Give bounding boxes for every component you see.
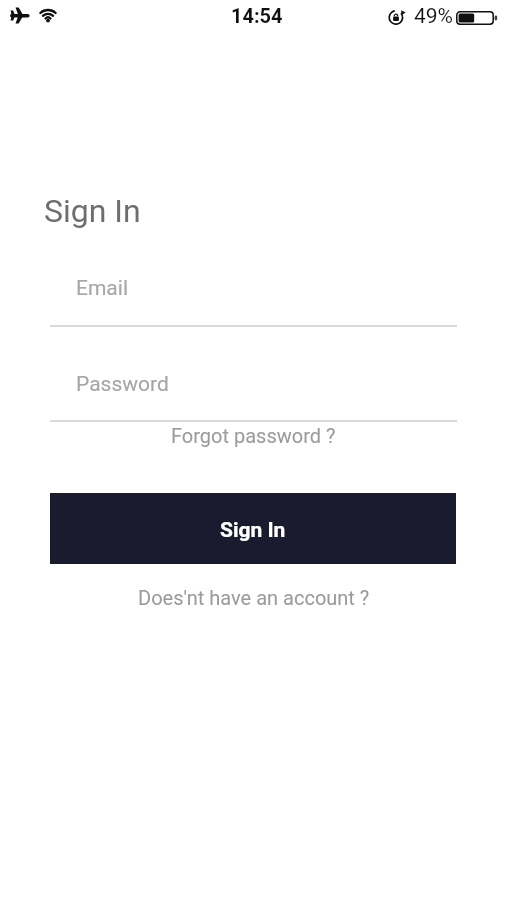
staticText: Sign In [44,192,141,230]
staticText: Email [76,276,128,301]
staticText: Password [76,372,169,397]
staticText: Does'nt have an account ? [138,586,370,609]
button[interactable]: Forgot password ? [171,424,336,447]
button[interactable]: Does'nt have an account ? [138,586,370,609]
button[interactable]: Sign In [50,493,456,564]
button[interactable]: Password [50,357,457,422]
button[interactable]: Email [50,262,457,327]
staticText: 49% [414,4,453,29]
staticText: Forgot password ? [171,424,336,447]
staticText: Sign In [220,518,286,543]
staticText: 14:54 [231,4,283,27]
